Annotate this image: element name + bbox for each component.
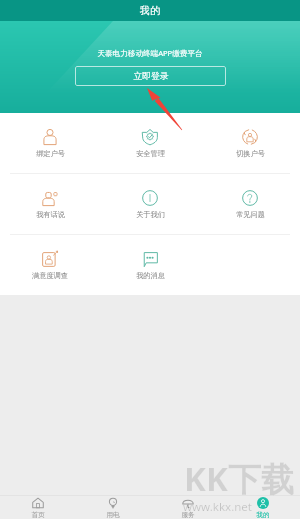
button[interactable]: 切换户号 bbox=[200, 113, 300, 173]
staticText: 我的消息 bbox=[136, 271, 165, 280]
staticText: 用电 bbox=[106, 511, 120, 519]
staticText: 常见问题 bbox=[236, 210, 265, 219]
staticText: 关于我们 bbox=[136, 210, 165, 219]
staticText: 满意度调查 bbox=[32, 271, 68, 280]
button[interactable]: 绑定户号 bbox=[0, 113, 100, 173]
button[interactable]: 用电 bbox=[75, 496, 150, 519]
button[interactable]: 我的 bbox=[225, 496, 300, 519]
staticText: 天泰电力移动终端APP缴费平台 bbox=[0, 48, 300, 58]
button[interactable]: 我有话说 bbox=[0, 174, 100, 234]
staticText: 我的 bbox=[256, 511, 270, 519]
staticText: 切换户号 bbox=[236, 149, 265, 158]
button[interactable]: 我的消息 bbox=[100, 235, 200, 295]
button[interactable]: 安全管理 bbox=[100, 113, 200, 173]
staticText: 绑定户号 bbox=[36, 149, 65, 158]
staticText: www.kkx.net bbox=[183, 499, 252, 515]
button[interactable]: 首页 bbox=[0, 496, 75, 519]
staticText: 立即登录 bbox=[133, 71, 169, 82]
button[interactable]: 立即登录 bbox=[75, 66, 226, 86]
button[interactable]: 满意度调查 bbox=[0, 235, 100, 295]
staticText: 我的 bbox=[140, 4, 160, 17]
button[interactable]: 关于我们 bbox=[100, 174, 200, 234]
staticText: 我有话说 bbox=[36, 210, 65, 219]
staticText: KK下载 bbox=[184, 456, 294, 501]
button[interactable]: 服务 bbox=[150, 496, 225, 519]
staticText: 首页 bbox=[31, 511, 45, 519]
button[interactable]: 常见问题 bbox=[200, 174, 300, 234]
staticText: 服务 bbox=[181, 511, 195, 519]
staticText: 安全管理 bbox=[136, 149, 165, 158]
